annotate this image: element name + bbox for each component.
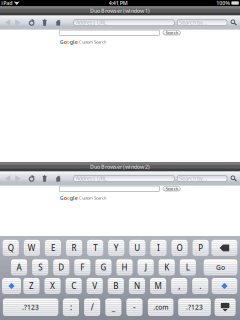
button[interactable]: - <box>126 298 142 316</box>
button[interactable]: T <box>87 240 103 256</box>
staticText: Duo Browser (window 2) <box>90 163 150 170</box>
staticText: V <box>92 281 97 291</box>
staticText: e <box>75 194 78 201</box>
staticText: : <box>70 302 72 312</box>
button[interactable]: N <box>129 278 145 294</box>
button[interactable]: Reload <box>26 15 37 29</box>
button[interactable]: Shift <box>2 278 21 294</box>
button[interactable]: Search <box>229 171 239 185</box>
button[interactable]: U <box>129 240 145 256</box>
button[interactable]: .com <box>148 298 173 316</box>
button[interactable]: H <box>116 259 133 275</box>
button[interactable]: L <box>180 259 196 275</box>
staticText: 100% <box>216 0 230 7</box>
button[interactable]: Reload <box>26 171 37 185</box>
button[interactable]: M <box>150 278 166 294</box>
staticText: / <box>91 302 94 312</box>
button[interactable]: Q <box>3 240 19 256</box>
button[interactable]: W <box>24 240 40 256</box>
button[interactable]: Home <box>53 15 64 29</box>
staticText: o <box>67 194 70 201</box>
button[interactable]: _ <box>105 298 121 316</box>
button[interactable]: Address URL <box>74 15 174 29</box>
staticText: G <box>60 38 64 45</box>
staticText: .com <box>153 303 168 312</box>
staticText: Custom Search <box>79 39 106 44</box>
staticText: Search by… <box>179 19 207 26</box>
button[interactable]: Search by… <box>177 15 227 29</box>
staticText: H <box>121 262 127 273</box>
staticText: J <box>145 262 147 273</box>
staticText: G <box>100 262 106 273</box>
button[interactable]: Delete <box>211 240 237 256</box>
button[interactable]: Search <box>163 30 180 35</box>
button[interactable]: .?123 <box>3 298 58 316</box>
staticText: o <box>67 38 70 45</box>
button[interactable]: : <box>63 298 79 316</box>
staticText: M <box>155 281 162 291</box>
staticText: Search <box>166 186 178 191</box>
staticText: Y <box>114 243 119 253</box>
button[interactable]: Hide keyboard <box>215 298 236 316</box>
staticText: Custom Search <box>79 195 106 200</box>
button[interactable]: Clear history <box>39 15 50 29</box>
button[interactable]: Back <box>2 15 13 29</box>
staticText: .?123 <box>186 303 203 312</box>
staticText: g <box>70 38 73 45</box>
button[interactable]: D <box>53 259 69 275</box>
staticText: Q <box>8 243 14 253</box>
staticText: I <box>157 243 160 253</box>
button[interactable]: . <box>192 278 208 294</box>
button[interactable]: Forward <box>12 15 23 29</box>
button[interactable]: P <box>193 240 209 256</box>
button[interactable]: Address URL <box>74 171 174 185</box>
staticText: O <box>177 243 183 253</box>
button[interactable]: Back <box>2 171 13 185</box>
staticText: l <box>73 38 75 45</box>
button[interactable]: , <box>171 278 187 294</box>
button[interactable]: Search <box>229 15 239 29</box>
button[interactable]: Search by… <box>177 171 227 185</box>
button[interactable]: Home <box>53 171 64 185</box>
button[interactable]: F <box>74 259 90 275</box>
staticText: A <box>17 262 22 273</box>
staticText: . <box>199 281 201 291</box>
staticText: X <box>50 281 55 291</box>
button[interactable]: S <box>32 259 48 275</box>
button[interactable]: G <box>95 259 111 275</box>
staticText: C <box>71 281 76 291</box>
button[interactable]: Forward <box>12 171 23 185</box>
staticText: Duo Browser (window 1) <box>90 7 150 14</box>
button[interactable]: Y <box>108 240 124 256</box>
button[interactable]: A <box>11 259 27 275</box>
button[interactable]: / <box>84 298 100 316</box>
staticText: U <box>134 243 140 253</box>
button[interactable]: O <box>171 240 188 256</box>
button[interactable]: E <box>45 240 61 256</box>
staticText: Address URL <box>76 175 107 182</box>
staticText: Z <box>29 281 34 291</box>
staticText: K <box>164 262 169 273</box>
staticText: , <box>178 281 180 291</box>
button[interactable]: V <box>87 278 103 294</box>
button[interactable]: K <box>159 259 175 275</box>
button[interactable]: I <box>150 240 166 256</box>
staticText: L <box>186 262 190 273</box>
button[interactable]: J <box>138 259 154 275</box>
staticText: N <box>134 281 140 291</box>
button[interactable]: X <box>44 278 61 294</box>
button[interactable]: Go <box>204 259 237 275</box>
button[interactable]: Shift <box>212 278 237 294</box>
button[interactable]: B <box>108 278 124 294</box>
staticText: Search <box>166 30 178 35</box>
button[interactable]: Search <box>163 186 180 191</box>
staticText: g <box>70 194 73 201</box>
staticText: .?123 <box>22 303 39 312</box>
button[interactable]: .?123 <box>178 298 211 316</box>
button[interactable]: R <box>66 240 82 256</box>
staticText: P <box>198 243 203 253</box>
button[interactable]: Clear history <box>39 171 50 185</box>
button[interactable]: C <box>66 278 82 294</box>
staticText: D <box>58 262 64 273</box>
button[interactable]: Z <box>23 278 39 294</box>
